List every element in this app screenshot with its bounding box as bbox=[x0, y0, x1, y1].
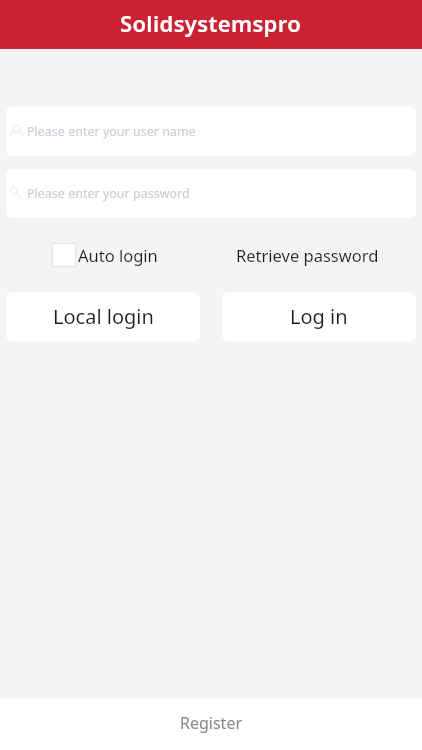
button[interactable]: Register bbox=[0, 699, 422, 750]
button[interactable]: Log in bbox=[222, 292, 416, 341]
button[interactable]: Retrieve password bbox=[228, 236, 387, 274]
staticText: Register bbox=[180, 712, 243, 734]
staticText: Please enter your password bbox=[27, 185, 190, 202]
staticText: Auto login bbox=[78, 244, 158, 266]
staticText: Retrieve password bbox=[236, 244, 379, 266]
button[interactable]: User name bbox=[6, 107, 416, 156]
other: Auto login checkbox bbox=[52, 243, 76, 267]
button[interactable]: Local login bbox=[6, 292, 200, 341]
button[interactable]: Auto login checkbox bbox=[52, 236, 158, 274]
button[interactable]: Password bbox=[6, 169, 416, 218]
other: User name bbox=[8, 123, 25, 140]
staticText: Local login bbox=[53, 303, 154, 330]
staticText: Log in bbox=[290, 303, 348, 330]
other: Password bbox=[8, 185, 25, 202]
staticText: Solidsystemspro bbox=[120, 8, 302, 38]
staticText: Please enter your user name bbox=[27, 123, 196, 140]
